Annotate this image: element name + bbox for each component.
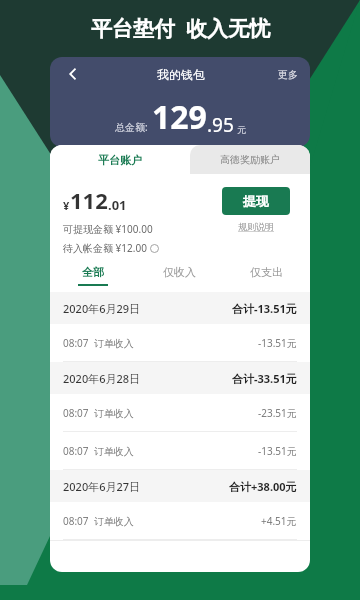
button[interactable]: 高德奖励账户: [190, 145, 310, 174]
staticText: -13.51元: [258, 444, 297, 458]
button[interactable]: 提现: [222, 187, 290, 215]
staticText: -23.51元: [258, 406, 297, 420]
staticText: 全部: [82, 265, 104, 279]
button[interactable]: 2020年6月27日: [50, 470, 310, 502]
staticText: 合计-33.51元: [232, 371, 297, 386]
staticText: 08:07 订单收入: [63, 336, 134, 350]
staticText: 合计+38.00元: [229, 479, 297, 494]
staticText: ¥: [63, 198, 70, 213]
staticText: 08:07 订单收入: [63, 514, 134, 528]
staticText: 规则说明: [238, 221, 274, 232]
staticText: 112: [70, 185, 108, 215]
staticText: 2020年6月28日: [63, 371, 141, 386]
staticText: 提现: [243, 193, 269, 209]
staticText: 仅收入: [163, 265, 196, 279]
button[interactable]: 08:07 订单收入: [50, 502, 310, 539]
staticText: 2020年6月27日: [63, 479, 141, 494]
staticText: 2020年6月29日: [63, 301, 141, 316]
staticText: 08:07 订单收入: [63, 444, 134, 458]
staticText: 更多: [278, 68, 298, 81]
staticText: 我的钱包: [157, 67, 205, 82]
staticText: +4.51元: [261, 514, 297, 528]
staticText: 129: [152, 95, 207, 139]
button[interactable]: 2020年6月28日: [50, 362, 310, 394]
staticText: 08:07 订单收入: [63, 406, 134, 420]
button[interactable]: 规则说明: [238, 221, 274, 232]
button[interactable]: 08:07 订单收入: [50, 394, 310, 431]
staticText: 合计-13.51元: [232, 301, 297, 316]
staticText: .01: [108, 196, 127, 214]
button[interactable]: 全部: [50, 259, 136, 292]
staticText: 平台账户: [98, 153, 142, 167]
button[interactable]: 平台账户: [50, 145, 190, 174]
button[interactable]: 更多: [276, 68, 300, 81]
staticText: 平台垫付 收入无忧: [91, 14, 270, 43]
staticText: 仅支出: [250, 265, 283, 279]
staticText: -13.51元: [258, 336, 297, 350]
button[interactable]: 仅收入: [136, 259, 223, 292]
button[interactable]: 仅支出: [223, 259, 310, 292]
staticText: 待入帐金额 ¥12.00: [63, 241, 147, 255]
button[interactable]: Back: [60, 61, 86, 87]
staticText: 高德奖励账户: [220, 153, 280, 166]
button[interactable]: 2020年6月29日: [50, 292, 310, 324]
button[interactable]: 08:07 订单收入: [50, 432, 310, 469]
staticText: .95: [207, 112, 234, 138]
staticText: 可提现金额 ¥100.00: [63, 222, 153, 236]
staticText: 元: [237, 124, 246, 135]
button[interactable]: 08:07 订单收入: [50, 324, 310, 361]
staticText: 总金额:: [115, 120, 148, 134]
